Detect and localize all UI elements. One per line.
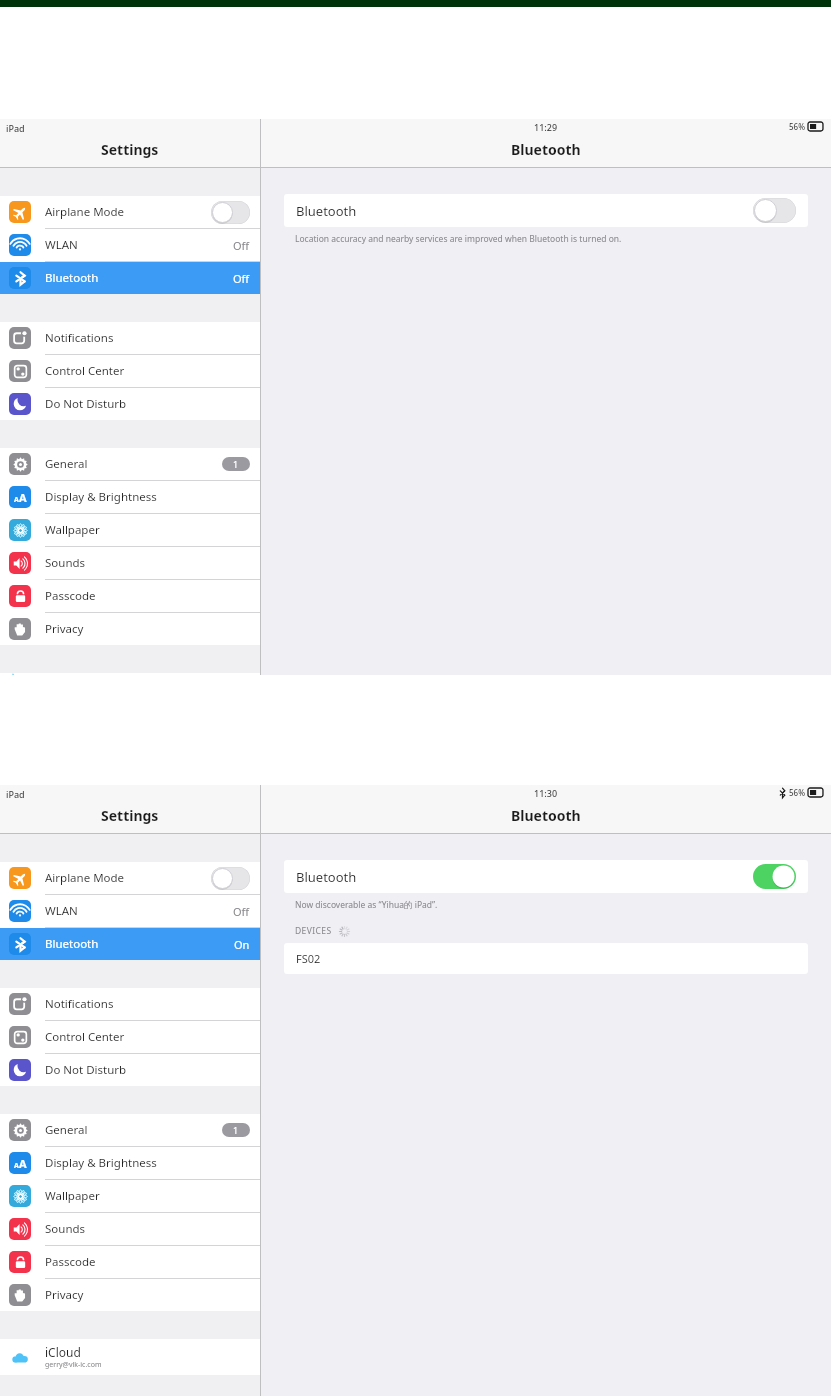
staticText: Settings [101, 806, 159, 825]
staticText: WLAN [45, 237, 78, 253]
button[interactable]: Toggle off [753, 198, 796, 223]
button[interactable]: Toggle off [211, 201, 250, 224]
button[interactable]: Airplane Mode [0, 196, 260, 228]
staticText: Display & Brightness [45, 489, 157, 505]
staticText: iPad [6, 122, 25, 134]
staticText: WLAN [45, 903, 78, 919]
staticText: 11:30 [534, 787, 558, 799]
staticText: gerry@vlk-ic.com [45, 1360, 102, 1370]
staticText: Airplane Mode [45, 204, 125, 220]
staticText: iPad [6, 788, 25, 800]
staticText: Wallpaper [45, 522, 100, 538]
button[interactable]: Notifications [0, 988, 260, 1020]
staticText: Privacy [45, 621, 84, 637]
button[interactable]: iCloud [0, 1339, 260, 1375]
staticText: iCloud [45, 1344, 81, 1360]
staticText: 1 [233, 1124, 239, 1136]
staticText: Display & Brightness [45, 1155, 157, 1171]
staticText: A [19, 1156, 27, 1171]
button[interactable]: Bluetooth [284, 194, 808, 227]
staticText: Off [233, 238, 250, 253]
button[interactable]: Do Not Disturb [0, 388, 260, 420]
button[interactable]: General [0, 1114, 260, 1146]
staticText: Notifications [45, 996, 114, 1012]
staticText: Airplane Mode [45, 870, 125, 886]
staticText: DEVICES [295, 925, 332, 937]
staticText: Bluetooth [45, 270, 99, 286]
staticText: Do Not Disturb [45, 1062, 127, 1078]
button[interactable]: WLAN [0, 229, 260, 261]
staticText: Do Not Disturb [45, 396, 127, 412]
staticText: Location accuracy and nearby services ar… [295, 233, 622, 245]
button[interactable]: A [0, 481, 260, 513]
button[interactable]: Do Not Disturb [0, 1054, 260, 1086]
button[interactable]: Passcode [0, 1246, 260, 1278]
button[interactable]: iCloud [0, 673, 260, 675]
staticText: A [14, 495, 19, 505]
staticText: A [19, 490, 27, 505]
staticText: Passcode [45, 588, 96, 604]
button[interactable]: Bluetooth [0, 928, 260, 960]
staticText: Notifications [45, 330, 114, 346]
staticText: 11:29 [534, 121, 558, 133]
staticText: FS02 [296, 951, 321, 966]
staticText: 1 [233, 458, 239, 470]
staticText: Off [233, 904, 250, 919]
staticText: Settings [101, 140, 159, 159]
button[interactable]: Notifications [0, 322, 260, 354]
staticText: Bluetooth [296, 868, 357, 886]
staticText: 56% [789, 121, 805, 132]
staticText: Passcode [45, 1254, 96, 1270]
button[interactable]: Control Center [0, 355, 260, 387]
button[interactable]: FS02 [284, 943, 808, 974]
staticText: Wallpaper [45, 1188, 100, 1204]
button[interactable]: Bluetooth [284, 860, 808, 893]
staticText: Sounds [45, 555, 86, 571]
button[interactable]: Bluetooth [0, 262, 260, 294]
staticText: General [45, 456, 88, 472]
button[interactable]: Passcode [0, 580, 260, 612]
button[interactable]: General [0, 448, 260, 480]
staticText: A [14, 1161, 19, 1171]
staticText: Privacy [45, 1287, 84, 1303]
button[interactable]: Sounds [0, 547, 260, 579]
button[interactable]: Privacy [0, 613, 260, 645]
button[interactable]: Toggle on [753, 864, 796, 889]
button[interactable]: Airplane Mode [0, 862, 260, 894]
button[interactable]: Wallpaper [0, 514, 260, 546]
button[interactable]: Control Center [0, 1021, 260, 1053]
button[interactable]: WLAN [0, 895, 260, 927]
button[interactable]: A [0, 1147, 260, 1179]
button[interactable]: Sounds [0, 1213, 260, 1245]
staticText: Bluetooth [511, 140, 581, 159]
staticText: On [234, 937, 250, 952]
button[interactable]: Toggle off [211, 867, 250, 890]
staticText: Sounds [45, 1221, 86, 1237]
button[interactable]: Wallpaper [0, 1180, 260, 1212]
staticText: Now discoverable as “Yihua的 iPad”. [295, 899, 438, 911]
staticText: General [45, 1122, 88, 1138]
staticText: Bluetooth [296, 202, 357, 220]
staticText: Bluetooth [45, 936, 99, 952]
staticText: 56% [789, 787, 805, 798]
staticText: Bluetooth [511, 806, 581, 825]
staticText: Control Center [45, 363, 125, 379]
staticText: Off [233, 271, 250, 286]
button[interactable]: Privacy [0, 1279, 260, 1311]
staticText: Control Center [45, 1029, 125, 1045]
